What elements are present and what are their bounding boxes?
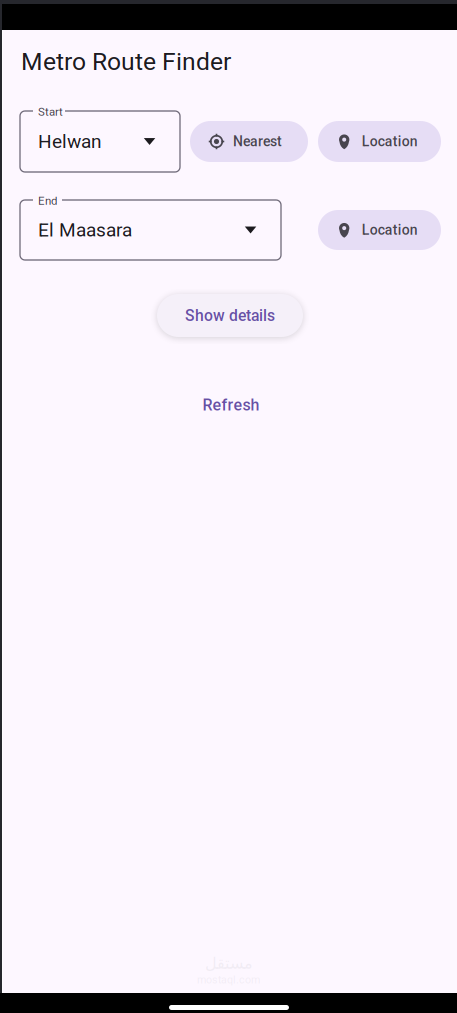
button[interactable]: Location (318, 121, 441, 162)
staticText: Refresh (202, 396, 259, 414)
staticText: Show details (185, 306, 275, 325)
staticText: Location (362, 222, 418, 238)
staticText: mostaql.com (197, 974, 260, 986)
staticText: El Maasara (38, 219, 132, 241)
button[interactable]: Refresh (184, 386, 278, 424)
button[interactable]: End (20, 200, 281, 260)
button[interactable]: Nearest (190, 121, 308, 162)
staticText: Location (362, 133, 418, 150)
button[interactable]: Show details (157, 294, 303, 337)
staticText: Nearest (233, 133, 282, 150)
staticText: Start (38, 105, 63, 118)
button[interactable]: Start (20, 111, 180, 172)
staticText: End (38, 194, 57, 207)
button[interactable]: Location (318, 210, 441, 250)
staticText: Helwan (38, 130, 102, 153)
staticText: مستقل (204, 954, 252, 973)
staticText: Metro Route Finder (21, 47, 231, 76)
